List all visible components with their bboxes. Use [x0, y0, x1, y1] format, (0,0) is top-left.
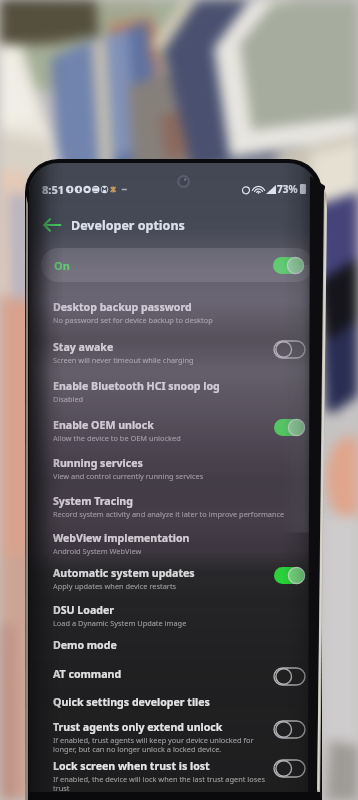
staticText: Lock screen when trust is lost	[53, 759, 210, 773]
button[interactable]: Enable OEM unlock	[29, 413, 317, 451]
button[interactable]: Stay awake	[29, 335, 317, 374]
staticText: Enable Bluetooth HCI snoop log	[53, 379, 220, 393]
staticText: View and control currently running servi…	[53, 471, 204, 481]
staticText: Screen will never timeout while charging	[53, 355, 194, 365]
button[interactable]: On	[41, 248, 313, 282]
staticText: Automatic system updates	[53, 566, 195, 580]
staticText: Load a Dynamic System Update image	[53, 618, 187, 628]
staticText: If enabled, the device will lock when th…	[53, 774, 275, 794]
staticText: Apply updates when device restarts	[53, 581, 177, 591]
staticText: Android System WebView	[53, 546, 142, 556]
staticText: AT command	[53, 667, 122, 681]
staticText: System Tracing	[53, 494, 133, 508]
staticText: Desktop backup password	[53, 300, 192, 314]
staticText: Running services	[53, 456, 143, 470]
staticText: 8:51	[42, 182, 64, 197]
staticText: Demo mode	[53, 638, 117, 652]
staticText: No password set for device backup to des…	[53, 315, 213, 325]
button[interactable]: System Tracing	[29, 489, 317, 526]
staticText: Disabled	[53, 394, 84, 404]
button[interactable]: Demo mode	[29, 633, 317, 662]
button[interactable]: WebView implementation	[29, 526, 317, 561]
button[interactable]: Back	[41, 214, 63, 236]
button[interactable]: Desktop backup password	[29, 295, 317, 335]
button[interactable]: AT command	[29, 662, 317, 690]
button[interactable]: Trust agents only extend unlock	[29, 715, 317, 754]
staticText: Quick settings developer tiles	[53, 695, 210, 709]
staticText: Allow the device to be OEM unlocked	[53, 433, 181, 443]
button[interactable]: DSU Loader	[29, 598, 317, 633]
button[interactable]: Enable Bluetooth HCI snoop log	[29, 374, 317, 413]
staticText: Developer options	[71, 217, 185, 234]
staticText: If enabled, trust agents will keep your …	[53, 735, 275, 755]
staticText: Trust agents only extend unlock	[53, 720, 223, 734]
staticText: DSU Loader	[53, 603, 114, 617]
button[interactable]: Lock screen when trust is lost	[29, 754, 317, 794]
staticText: Record system activity and analyze it la…	[53, 509, 285, 519]
staticText: On	[54, 258, 70, 273]
staticText: 73%	[277, 182, 298, 196]
staticText: Stay awake	[53, 340, 114, 354]
staticText: Enable OEM unlock	[53, 418, 154, 432]
staticText: WebView implementation	[53, 531, 190, 545]
button[interactable]: Quick settings developer tiles	[29, 690, 317, 715]
button[interactable]: Automatic system updates	[29, 561, 317, 598]
button[interactable]: Running services	[29, 451, 317, 489]
